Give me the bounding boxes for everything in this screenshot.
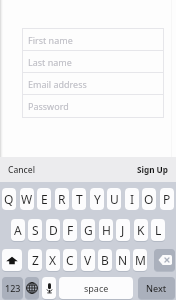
button[interactable]: space [59, 277, 133, 299]
button[interactable]: Z [28, 249, 42, 271]
staticText: J [121, 222, 125, 238]
staticText: space [84, 282, 109, 294]
button[interactable]: W [20, 188, 34, 210]
button[interactable]: Last name [23, 51, 163, 72]
button[interactable]: T [72, 188, 86, 210]
button[interactable]: Dictation [42, 277, 56, 299]
staticText: E [41, 191, 48, 207]
button[interactable]: J [116, 219, 130, 241]
button[interactable]: L [151, 219, 165, 241]
button[interactable]: Y [90, 188, 104, 210]
staticText: L [155, 222, 162, 238]
staticText: S [32, 222, 39, 238]
staticText: K [137, 222, 145, 238]
staticText: Next [146, 282, 167, 294]
staticText: X [49, 252, 57, 268]
button[interactable]: E [37, 188, 51, 210]
staticText: C [66, 252, 74, 268]
button[interactable]: N [116, 249, 130, 271]
button[interactable]: Sign Up [137, 164, 168, 175]
button[interactable]: First name [23, 29, 163, 50]
button[interactable]: S [28, 219, 42, 241]
button[interactable]: H [99, 219, 113, 241]
button[interactable]: B [98, 249, 112, 271]
button[interactable]: U [107, 188, 121, 210]
button[interactable]: Cancel [8, 164, 35, 176]
button[interactable]: P [160, 188, 174, 210]
button[interactable]: Next [138, 277, 175, 299]
button[interactable]: O [142, 188, 156, 210]
staticText: M [135, 252, 146, 268]
staticText: P [163, 191, 171, 207]
button[interactable]: Shift [2, 249, 22, 271]
button[interactable]: A [11, 219, 25, 241]
staticText: O [144, 191, 154, 207]
staticText: A [14, 222, 22, 238]
button[interactable]: Backspace [154, 249, 175, 271]
staticText: First name [28, 34, 73, 46]
staticText: U [110, 191, 119, 207]
button[interactable]: D [46, 219, 60, 241]
button[interactable]: Email address [23, 73, 163, 94]
staticText: I [130, 191, 135, 207]
staticText: Z [32, 252, 39, 268]
button[interactable]: 123 [2, 277, 23, 299]
staticText: Password [28, 100, 69, 112]
staticText: D [49, 222, 58, 238]
button[interactable]: I [125, 188, 139, 210]
staticText: W [21, 191, 33, 207]
staticText: R [58, 191, 66, 207]
button[interactable]: Q [2, 188, 16, 210]
button[interactable]: Password [23, 95, 163, 117]
staticText: Email address [28, 78, 87, 90]
staticText: F [67, 222, 74, 238]
button[interactable]: Switch keyboard [25, 277, 39, 299]
button[interactable]: F [63, 219, 77, 241]
button[interactable]: G [81, 219, 95, 241]
staticText: Cancel [8, 164, 35, 176]
staticText: T [76, 191, 83, 207]
staticText: H [102, 222, 111, 238]
staticText: Sign Up [137, 164, 168, 175]
button[interactable]: R [55, 188, 69, 210]
staticText: Y [94, 191, 101, 207]
staticText: Last name [28, 56, 72, 68]
staticText: 123 [5, 282, 21, 294]
staticText: V [84, 252, 92, 268]
button[interactable]: X [46, 249, 60, 271]
button[interactable]: V [81, 249, 95, 271]
staticText: Q [4, 191, 14, 207]
button[interactable]: K [134, 219, 148, 241]
button[interactable]: M [133, 249, 147, 271]
staticText: N [118, 252, 128, 268]
staticText: B [101, 252, 109, 268]
staticText: G [84, 222, 93, 238]
button[interactable]: C [63, 249, 77, 271]
